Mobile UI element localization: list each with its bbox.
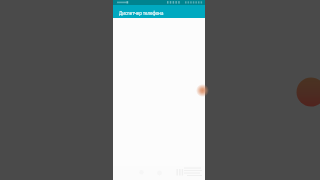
button[interactable]: Add [196, 84, 209, 97]
staticText: Диспетчер телефона [119, 10, 164, 16]
